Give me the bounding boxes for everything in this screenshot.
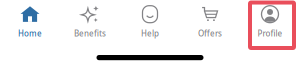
staticText: Benefits — [74, 28, 106, 39]
staticText: Offers — [198, 28, 222, 39]
button[interactable]: Offers — [180, 2, 240, 42]
staticText: Profile — [257, 28, 282, 39]
button[interactable]: Home — [0, 2, 60, 42]
button[interactable]: Help — [120, 2, 180, 42]
staticText: Help — [141, 28, 159, 39]
button[interactable]: Benefits — [60, 2, 120, 42]
staticText: Home — [18, 28, 42, 39]
button[interactable]: Profile — [240, 2, 300, 42]
